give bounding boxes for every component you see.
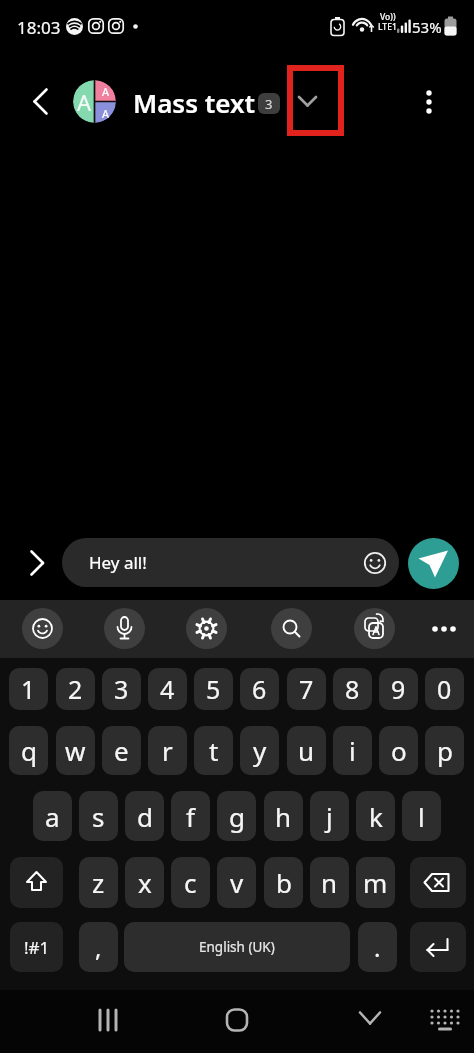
- button[interactable]: 3: [102, 668, 141, 710]
- staticText: n: [321, 865, 338, 900]
- button[interactable]: f: [171, 791, 210, 841]
- button[interactable]: e: [102, 726, 141, 775]
- staticText: k: [369, 799, 383, 834]
- button[interactable]: [425, 1000, 465, 1040]
- staticText: l: [418, 799, 425, 834]
- staticText: English (UK): [199, 938, 275, 956]
- staticText: 4: [160, 672, 175, 706]
- button[interactable]: u: [287, 726, 326, 775]
- button[interactable]: [287, 65, 344, 136]
- staticText: o: [391, 733, 407, 768]
- button[interactable]: h: [264, 791, 303, 841]
- button[interactable]: 5: [194, 668, 233, 710]
- button[interactable]: [22, 546, 54, 580]
- button[interactable]: [410, 922, 466, 972]
- button[interactable]: [410, 857, 466, 908]
- button[interactable]: A: [73, 80, 116, 123]
- staticText: b: [276, 865, 292, 900]
- button[interactable]: Hey all!: [62, 538, 399, 587]
- staticText: 2: [68, 672, 83, 706]
- button[interactable]: [271, 608, 312, 649]
- button[interactable]: [350, 1000, 390, 1040]
- button[interactable]: y: [240, 726, 279, 775]
- button[interactable]: English (UK): [124, 922, 350, 972]
- staticText: d: [137, 799, 153, 834]
- button[interactable]: [10, 857, 63, 908]
- button[interactable]: t: [194, 726, 233, 775]
- button[interactable]: [217, 1000, 257, 1040]
- staticText: h: [275, 799, 292, 834]
- staticText: 5: [206, 672, 221, 706]
- button[interactable]: [408, 538, 459, 589]
- staticText: Vo)): [380, 11, 396, 23]
- staticText: r: [162, 733, 173, 768]
- button[interactable]: [88, 1000, 128, 1040]
- button[interactable]: m: [356, 857, 395, 908]
- staticText: 3: [265, 95, 273, 113]
- button[interactable]: g: [217, 791, 256, 841]
- staticText: y: [253, 733, 267, 768]
- staticText: 7: [299, 672, 314, 706]
- staticText: t: [209, 733, 219, 768]
- button[interactable]: ,: [79, 922, 118, 972]
- staticText: u: [298, 733, 315, 768]
- staticText: Mass text: [133, 85, 256, 120]
- button[interactable]: o: [379, 726, 418, 775]
- button[interactable]: [354, 608, 395, 649]
- staticText: 6: [252, 672, 267, 706]
- button[interactable]: s: [79, 791, 118, 841]
- staticText: x: [138, 865, 152, 900]
- staticText: 3: [114, 672, 129, 706]
- button[interactable]: [186, 608, 227, 649]
- button[interactable]: 0: [425, 668, 464, 710]
- button[interactable]: b: [264, 857, 303, 908]
- staticText: j: [326, 799, 333, 834]
- staticText: 1: [21, 672, 36, 706]
- staticText: p: [437, 733, 453, 768]
- button[interactable]: 2: [56, 668, 95, 710]
- staticText: a: [45, 799, 60, 834]
- button[interactable]: 7: [287, 668, 326, 710]
- button[interactable]: 8: [333, 668, 372, 710]
- button[interactable]: j: [310, 791, 349, 841]
- button[interactable]: i: [333, 726, 372, 775]
- button[interactable]: q: [9, 726, 48, 775]
- staticText: m: [363, 865, 388, 900]
- staticText: !#1: [24, 936, 50, 959]
- staticText: g: [229, 799, 245, 834]
- staticText: z: [92, 865, 105, 900]
- button[interactable]: k: [356, 791, 395, 841]
- staticText: e: [114, 733, 129, 768]
- button[interactable]: [412, 85, 446, 119]
- button[interactable]: !#1: [10, 922, 63, 972]
- button[interactable]: d: [125, 791, 164, 841]
- staticText: A: [77, 87, 92, 117]
- staticText: 18:03: [17, 16, 61, 39]
- button[interactable]: v: [217, 857, 256, 908]
- button[interactable]: x: [125, 857, 164, 908]
- button[interactable]: 4: [148, 668, 187, 710]
- staticText: ,: [95, 931, 102, 964]
- button[interactable]: [104, 608, 145, 649]
- staticText: c: [184, 865, 197, 900]
- staticText: v: [230, 865, 244, 900]
- staticText: A: [102, 84, 110, 99]
- button[interactable]: [22, 608, 63, 649]
- button[interactable]: l: [402, 791, 441, 841]
- button[interactable]: [424, 608, 465, 649]
- button[interactable]: z: [79, 857, 118, 908]
- button[interactable]: n: [310, 857, 349, 908]
- button[interactable]: 6: [240, 668, 279, 710]
- staticText: f: [186, 799, 195, 834]
- button[interactable]: p: [425, 726, 464, 775]
- button[interactable]: w: [56, 726, 95, 775]
- button[interactable]: 9: [379, 668, 418, 710]
- staticText: LTE1: [378, 21, 397, 33]
- button[interactable]: .: [358, 922, 397, 972]
- button[interactable]: r: [148, 726, 187, 775]
- button[interactable]: [24, 85, 58, 119]
- button[interactable]: c: [171, 857, 210, 908]
- button[interactable]: a: [33, 791, 72, 841]
- staticText: 0: [437, 672, 452, 706]
- button[interactable]: 1: [9, 668, 48, 710]
